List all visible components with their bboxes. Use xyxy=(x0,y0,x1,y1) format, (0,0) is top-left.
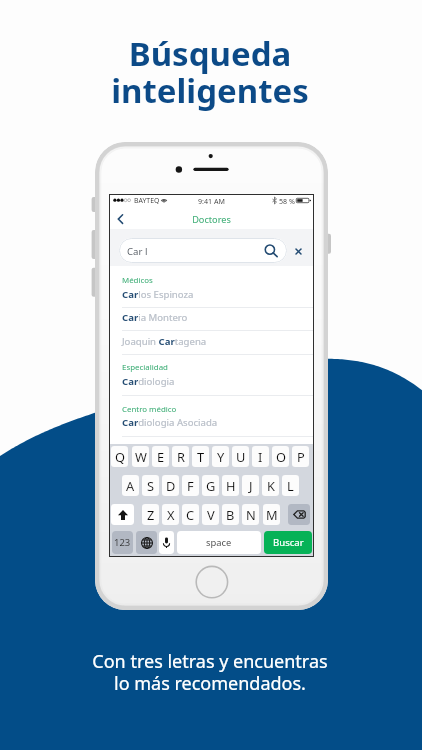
button[interactable]: Cardiologia Asociada xyxy=(110,413,313,429)
button[interactable]: O xyxy=(272,446,289,467)
staticText: G xyxy=(206,477,216,494)
button[interactable]: N xyxy=(242,504,259,525)
staticText: E xyxy=(157,448,165,465)
button[interactable]: F xyxy=(182,475,199,496)
button[interactable]: Joaquin Cartagena xyxy=(110,332,313,348)
staticText: S xyxy=(147,477,155,494)
staticText: Car l xyxy=(127,245,148,258)
staticText: X xyxy=(167,506,175,523)
button[interactable]: space xyxy=(177,531,261,554)
other: Search xyxy=(264,244,278,258)
staticText: Cardiologia xyxy=(122,375,175,388)
button[interactable]: W xyxy=(132,446,149,467)
staticText: Doctores xyxy=(110,213,313,226)
staticText: A xyxy=(126,477,135,494)
button[interactable]: T xyxy=(192,446,209,467)
staticText: I xyxy=(258,448,263,465)
button[interactable]: Shift xyxy=(111,504,134,525)
staticText: H xyxy=(226,477,236,494)
staticText: O xyxy=(276,448,286,465)
button[interactable]: Carlos Espinoza xyxy=(110,285,313,301)
button[interactable]: Back xyxy=(114,208,134,228)
button[interactable]: X xyxy=(162,504,179,525)
button[interactable]: G xyxy=(202,475,219,496)
staticText: Carlos Espinoza xyxy=(122,288,194,301)
staticText: Buscar xyxy=(273,536,304,549)
staticText: space xyxy=(206,536,232,549)
button[interactable]: U xyxy=(232,446,249,467)
button[interactable]: A xyxy=(122,475,139,496)
staticText: F xyxy=(187,477,194,494)
staticText: L xyxy=(287,477,294,494)
staticText: K xyxy=(267,477,275,494)
staticText: 123 xyxy=(114,536,131,549)
button[interactable]: M xyxy=(263,504,280,525)
button[interactable]: D xyxy=(162,475,179,496)
button[interactable]: Cardiologia xyxy=(110,372,313,388)
staticText: Y xyxy=(217,448,225,465)
button[interactable]: Y xyxy=(212,446,229,467)
staticText: N xyxy=(246,506,256,523)
button[interactable]: L xyxy=(282,475,299,496)
button[interactable]: P xyxy=(292,446,309,467)
button[interactable]: J xyxy=(242,475,259,496)
button[interactable]: Clear xyxy=(290,243,306,259)
button[interactable]: S xyxy=(142,475,159,496)
staticText: W xyxy=(135,448,147,465)
staticText: Con tres letras y encuentras lo más reco… xyxy=(0,649,421,696)
button[interactable]: H xyxy=(222,475,239,496)
staticText: U xyxy=(236,448,246,465)
button[interactable]: I xyxy=(252,446,269,467)
button[interactable]: Backspace xyxy=(288,504,310,525)
button[interactable]: R xyxy=(172,446,189,467)
button[interactable]: K xyxy=(262,475,279,496)
staticText: Z xyxy=(147,506,155,523)
button[interactable]: V xyxy=(202,504,219,525)
button[interactable]: C xyxy=(182,504,199,525)
staticText: 58 % xyxy=(279,196,295,206)
button[interactable]: E xyxy=(152,446,169,467)
staticText: BAYTEQ xyxy=(134,196,160,205)
staticText: D xyxy=(166,477,176,494)
button[interactable]: Caria Montero xyxy=(110,308,313,324)
button[interactable]: Z xyxy=(142,504,159,525)
staticText: Centro médico xyxy=(122,404,177,415)
staticText: B xyxy=(226,506,235,523)
staticText: J xyxy=(249,477,253,494)
staticText: T xyxy=(197,448,205,465)
staticText: C xyxy=(186,506,195,523)
button[interactable]: Voice input xyxy=(159,531,174,554)
button[interactable]: Change language xyxy=(136,531,157,554)
staticText: 9:41 AM xyxy=(110,196,313,206)
staticText: M xyxy=(266,506,278,523)
button[interactable]: Buscar xyxy=(264,531,312,554)
staticText: R xyxy=(177,448,185,465)
staticText: Q xyxy=(115,448,125,465)
staticText: Búsqueda inteligentes xyxy=(0,31,421,113)
staticText: Caria Montero xyxy=(122,311,188,324)
staticText: Médicos xyxy=(122,275,153,286)
button[interactable]: 123 xyxy=(112,531,133,554)
staticText: P xyxy=(297,448,305,465)
staticText: Cardiologia Asociada xyxy=(122,416,218,429)
staticText: V xyxy=(207,506,215,523)
staticText: Especialidad xyxy=(122,362,168,373)
staticText: Joaquin Cartagena xyxy=(122,335,207,348)
button[interactable]: Q xyxy=(111,446,128,467)
button[interactable]: B xyxy=(222,504,239,525)
button[interactable]: Car l xyxy=(119,238,287,263)
